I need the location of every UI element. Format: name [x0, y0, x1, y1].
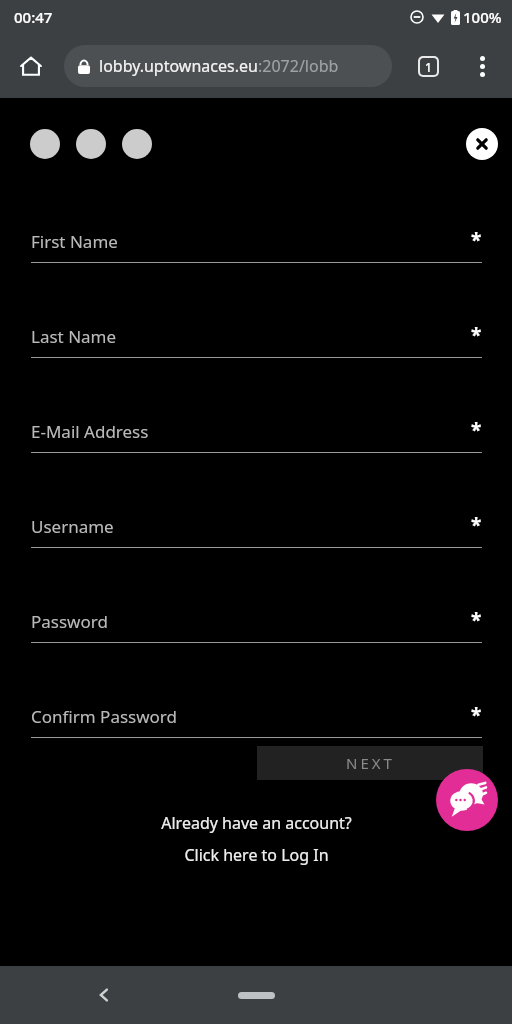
staticText: Password: [31, 610, 471, 633]
staticText: E-Mail Address: [31, 420, 471, 443]
staticText: Last Name: [31, 325, 471, 348]
button[interactable]: Step 2: [76, 129, 106, 159]
staticText: Click here to Log In: [184, 844, 329, 866]
staticText: *: [471, 227, 482, 253]
button[interactable]: Home: [14, 49, 48, 83]
button[interactable]: Confirm Password: [31, 702, 482, 728]
button[interactable]: Close: [466, 128, 498, 160]
button[interactable]: Last Name: [31, 322, 482, 348]
staticText: *: [471, 322, 482, 348]
button[interactable]: lobby.uptownaces.eu: [64, 45, 392, 87]
button[interactable]: Chat support: [436, 769, 498, 831]
staticText: Confirm Password: [31, 705, 471, 728]
button[interactable]: Step 1: [30, 129, 60, 159]
staticText: Already have an account?: [161, 812, 352, 834]
staticText: 00:47: [14, 7, 53, 27]
button[interactable]: NEXT: [257, 746, 483, 780]
staticText: 100%: [463, 7, 502, 27]
button[interactable]: Tabs: [410, 48, 446, 84]
staticText: *: [471, 702, 482, 728]
staticText: 1: [425, 59, 432, 75]
staticText: First Name: [31, 230, 471, 253]
button[interactable]: Step 3: [122, 129, 152, 159]
staticText: :2072/lobb: [258, 55, 339, 77]
staticText: NEXT: [346, 753, 395, 773]
staticText: *: [471, 512, 482, 538]
button[interactable]: Home: [238, 992, 275, 999]
staticText: *: [471, 417, 482, 443]
button[interactable]: Back: [86, 977, 122, 1013]
button[interactable]: More options: [464, 48, 500, 84]
staticText: Username: [31, 515, 471, 538]
button[interactable]: E-Mail Address: [31, 417, 482, 443]
staticText: lobby.uptownaces.eu: [99, 55, 258, 77]
button[interactable]: Already have an account?: [0, 812, 512, 866]
staticText: *: [471, 607, 482, 633]
button[interactable]: First Name: [31, 227, 482, 253]
button[interactable]: Password: [31, 607, 482, 633]
button[interactable]: Username: [31, 512, 482, 538]
